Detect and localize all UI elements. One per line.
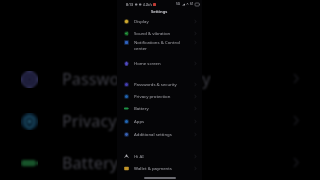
- button[interactable]: Apps: [117, 115, 202, 127]
- staticText: Privacy: [62, 110, 117, 132]
- button[interactable]: Display: [117, 15, 202, 27]
- staticText: Battery: [62, 152, 119, 174]
- staticText: Apps: [134, 118, 145, 124]
- staticText: Display: [134, 18, 149, 24]
- button[interactable]: Wallet & payments: [117, 162, 202, 174]
- button[interactable]: Passwords & security: [117, 78, 202, 90]
- button[interactable]: Privacy: [0, 100, 320, 142]
- staticText: Home screen: [134, 60, 161, 66]
- staticText: 4.2k/s: [143, 3, 152, 7]
- button[interactable]: Hi AI: [117, 150, 202, 162]
- staticText: Wallet & payments: [134, 165, 172, 171]
- button[interactable]: Battery: [0, 142, 320, 180]
- staticText: Settings: [151, 9, 168, 15]
- staticText: Additional settings: [134, 131, 172, 137]
- staticText: 61: [190, 2, 194, 6]
- button[interactable]: Password & privacy: [0, 58, 320, 100]
- staticText: Hi AI: [134, 153, 144, 159]
- staticText: 5G: [176, 2, 181, 6]
- staticText: Privacy protection: [134, 93, 171, 99]
- button[interactable]: Home screen: [117, 57, 202, 69]
- staticText: Notifications & Control: [134, 39, 180, 45]
- button[interactable]: Battery: [117, 102, 202, 114]
- button[interactable]: Privacy protection: [117, 90, 202, 102]
- button[interactable]: Sound & vibration: [117, 27, 202, 39]
- button[interactable]: Additional settings: [117, 128, 202, 140]
- staticText: Passwords & security: [134, 81, 177, 87]
- staticText: Password & privacy: [62, 68, 211, 90]
- staticText: Battery: [134, 105, 149, 111]
- button[interactable]: Notifications & Control: [117, 38, 202, 52]
- staticText: Sound & vibration: [134, 30, 171, 36]
- staticText: center: [134, 45, 147, 51]
- staticText: 8:13: [126, 2, 134, 7]
